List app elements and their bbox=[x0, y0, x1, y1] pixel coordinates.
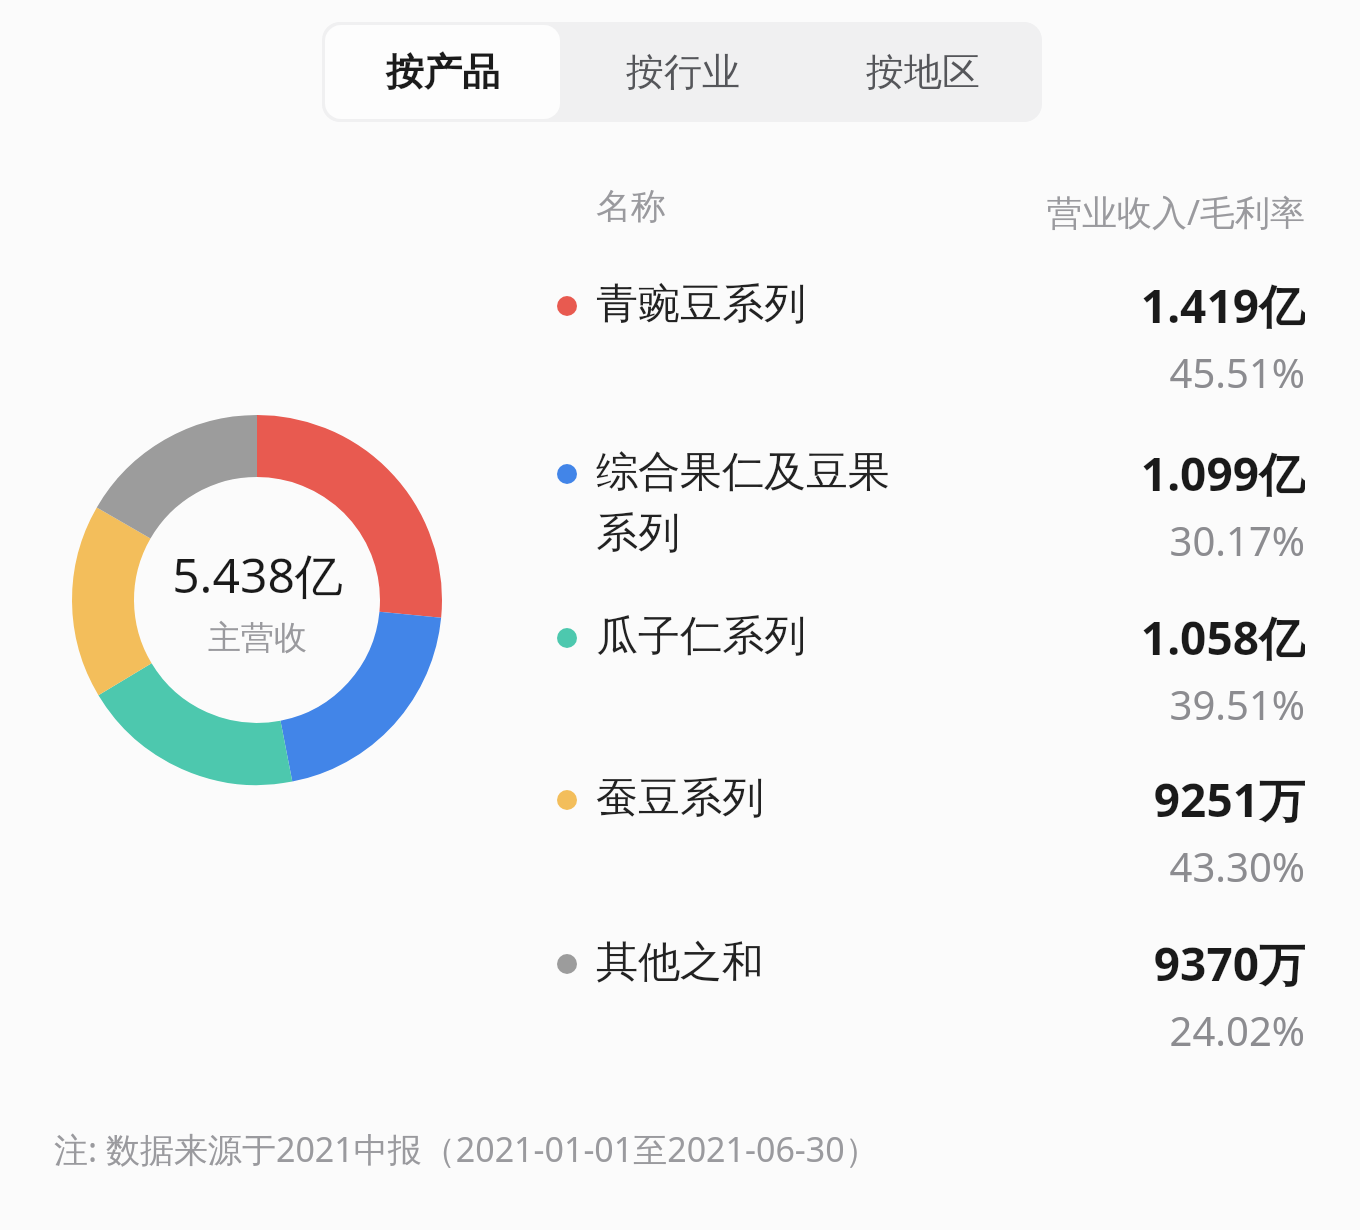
staticText: 45.51% bbox=[1169, 345, 1305, 399]
staticText: 39.51% bbox=[1169, 677, 1305, 731]
staticText: 瓜子仁系列 bbox=[596, 610, 806, 663]
staticText: 43.30% bbox=[1169, 839, 1305, 893]
staticText: 注: 数据来源于2021中报（2021-01-01至2021-06-30） bbox=[54, 1126, 879, 1172]
button[interactable]: 按产品 bbox=[325, 25, 560, 119]
staticText: 24.02% bbox=[1169, 1003, 1305, 1057]
staticText: 青豌豆系列 bbox=[596, 278, 806, 331]
staticText: 营业收入/毛利率 bbox=[1046, 188, 1305, 236]
staticText: 其他之和 bbox=[596, 936, 764, 989]
staticText: 1.419亿 bbox=[1140, 274, 1305, 334]
staticText: 按产品 bbox=[386, 48, 500, 96]
staticText: 9370万 bbox=[1153, 932, 1305, 992]
button[interactable]: 综合果仁及豆果 bbox=[596, 446, 926, 560]
staticText: 按行业 bbox=[626, 48, 740, 96]
staticText: 蚕豆系列 bbox=[596, 772, 764, 825]
staticText: 系列 bbox=[596, 507, 680, 560]
button[interactable]: 瓜子仁系列 bbox=[596, 610, 926, 663]
staticText: 主营收 bbox=[208, 617, 307, 659]
button[interactable]: 按地区 bbox=[803, 22, 1042, 122]
staticText: 按地区 bbox=[866, 48, 980, 96]
staticText: 1.058亿 bbox=[1140, 606, 1305, 666]
staticText: 综合果仁及豆果 bbox=[596, 446, 890, 499]
staticText: 30.17% bbox=[1169, 513, 1305, 567]
staticText: 9251万 bbox=[1153, 768, 1305, 828]
button[interactable]: 蚕豆系列 bbox=[596, 772, 926, 825]
button[interactable]: 青豌豆系列 bbox=[596, 278, 926, 331]
staticText: 名称 bbox=[596, 184, 666, 228]
button[interactable]: 按行业 bbox=[563, 22, 803, 122]
staticText: 1.099亿 bbox=[1140, 442, 1305, 502]
staticText: 5.438亿 bbox=[172, 542, 343, 608]
button[interactable]: 其他之和 bbox=[596, 936, 926, 989]
